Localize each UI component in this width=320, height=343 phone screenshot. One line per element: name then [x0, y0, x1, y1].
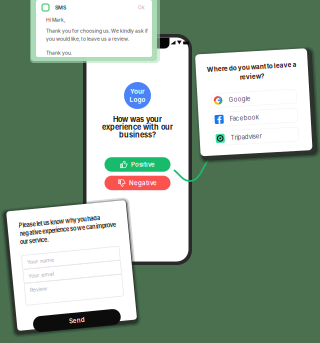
staticText: Facebook — [229, 113, 258, 121]
staticText: SMS — [55, 4, 66, 11]
button[interactable]: Facebook — [212, 110, 297, 124]
button[interactable]: Negative — [104, 176, 170, 190]
staticText: Tripadviser — [229, 132, 260, 140]
staticText: Negative — [129, 179, 157, 187]
staticText: business? — [119, 130, 156, 139]
button[interactable]: Google — [212, 91, 297, 105]
staticText: Hi Mark, — [46, 17, 65, 23]
staticText: Please let us know why you had a — [23, 217, 105, 224]
button[interactable]: Positive — [104, 157, 170, 172]
button[interactable]: Send — [28, 312, 116, 328]
staticText: Send — [64, 317, 80, 324]
staticText: Your — [130, 87, 145, 95]
staticText: Thank you. — [46, 50, 72, 56]
staticText: our service. — [23, 234, 52, 240]
staticText: Where do you want to leave a — [209, 63, 299, 71]
staticText: Positive — [131, 161, 155, 168]
staticText: Review — [28, 282, 45, 289]
staticText: you would like, to leave us a review. — [46, 36, 129, 42]
staticText: Logo — [129, 96, 145, 103]
staticText: experience with our — [102, 123, 173, 132]
staticText: Thank you for choosing us. We kindly ask… — [46, 28, 148, 34]
staticText: negative experience so we can improve — [23, 225, 120, 232]
staticText: Ok — [138, 5, 145, 10]
staticText: Your name — [28, 254, 55, 261]
staticText: Google — [229, 94, 251, 102]
staticText: Your email — [28, 268, 54, 275]
staticText: How was your — [113, 115, 162, 124]
staticText: review? — [241, 73, 266, 80]
button[interactable]: Tripadviser — [212, 129, 297, 143]
